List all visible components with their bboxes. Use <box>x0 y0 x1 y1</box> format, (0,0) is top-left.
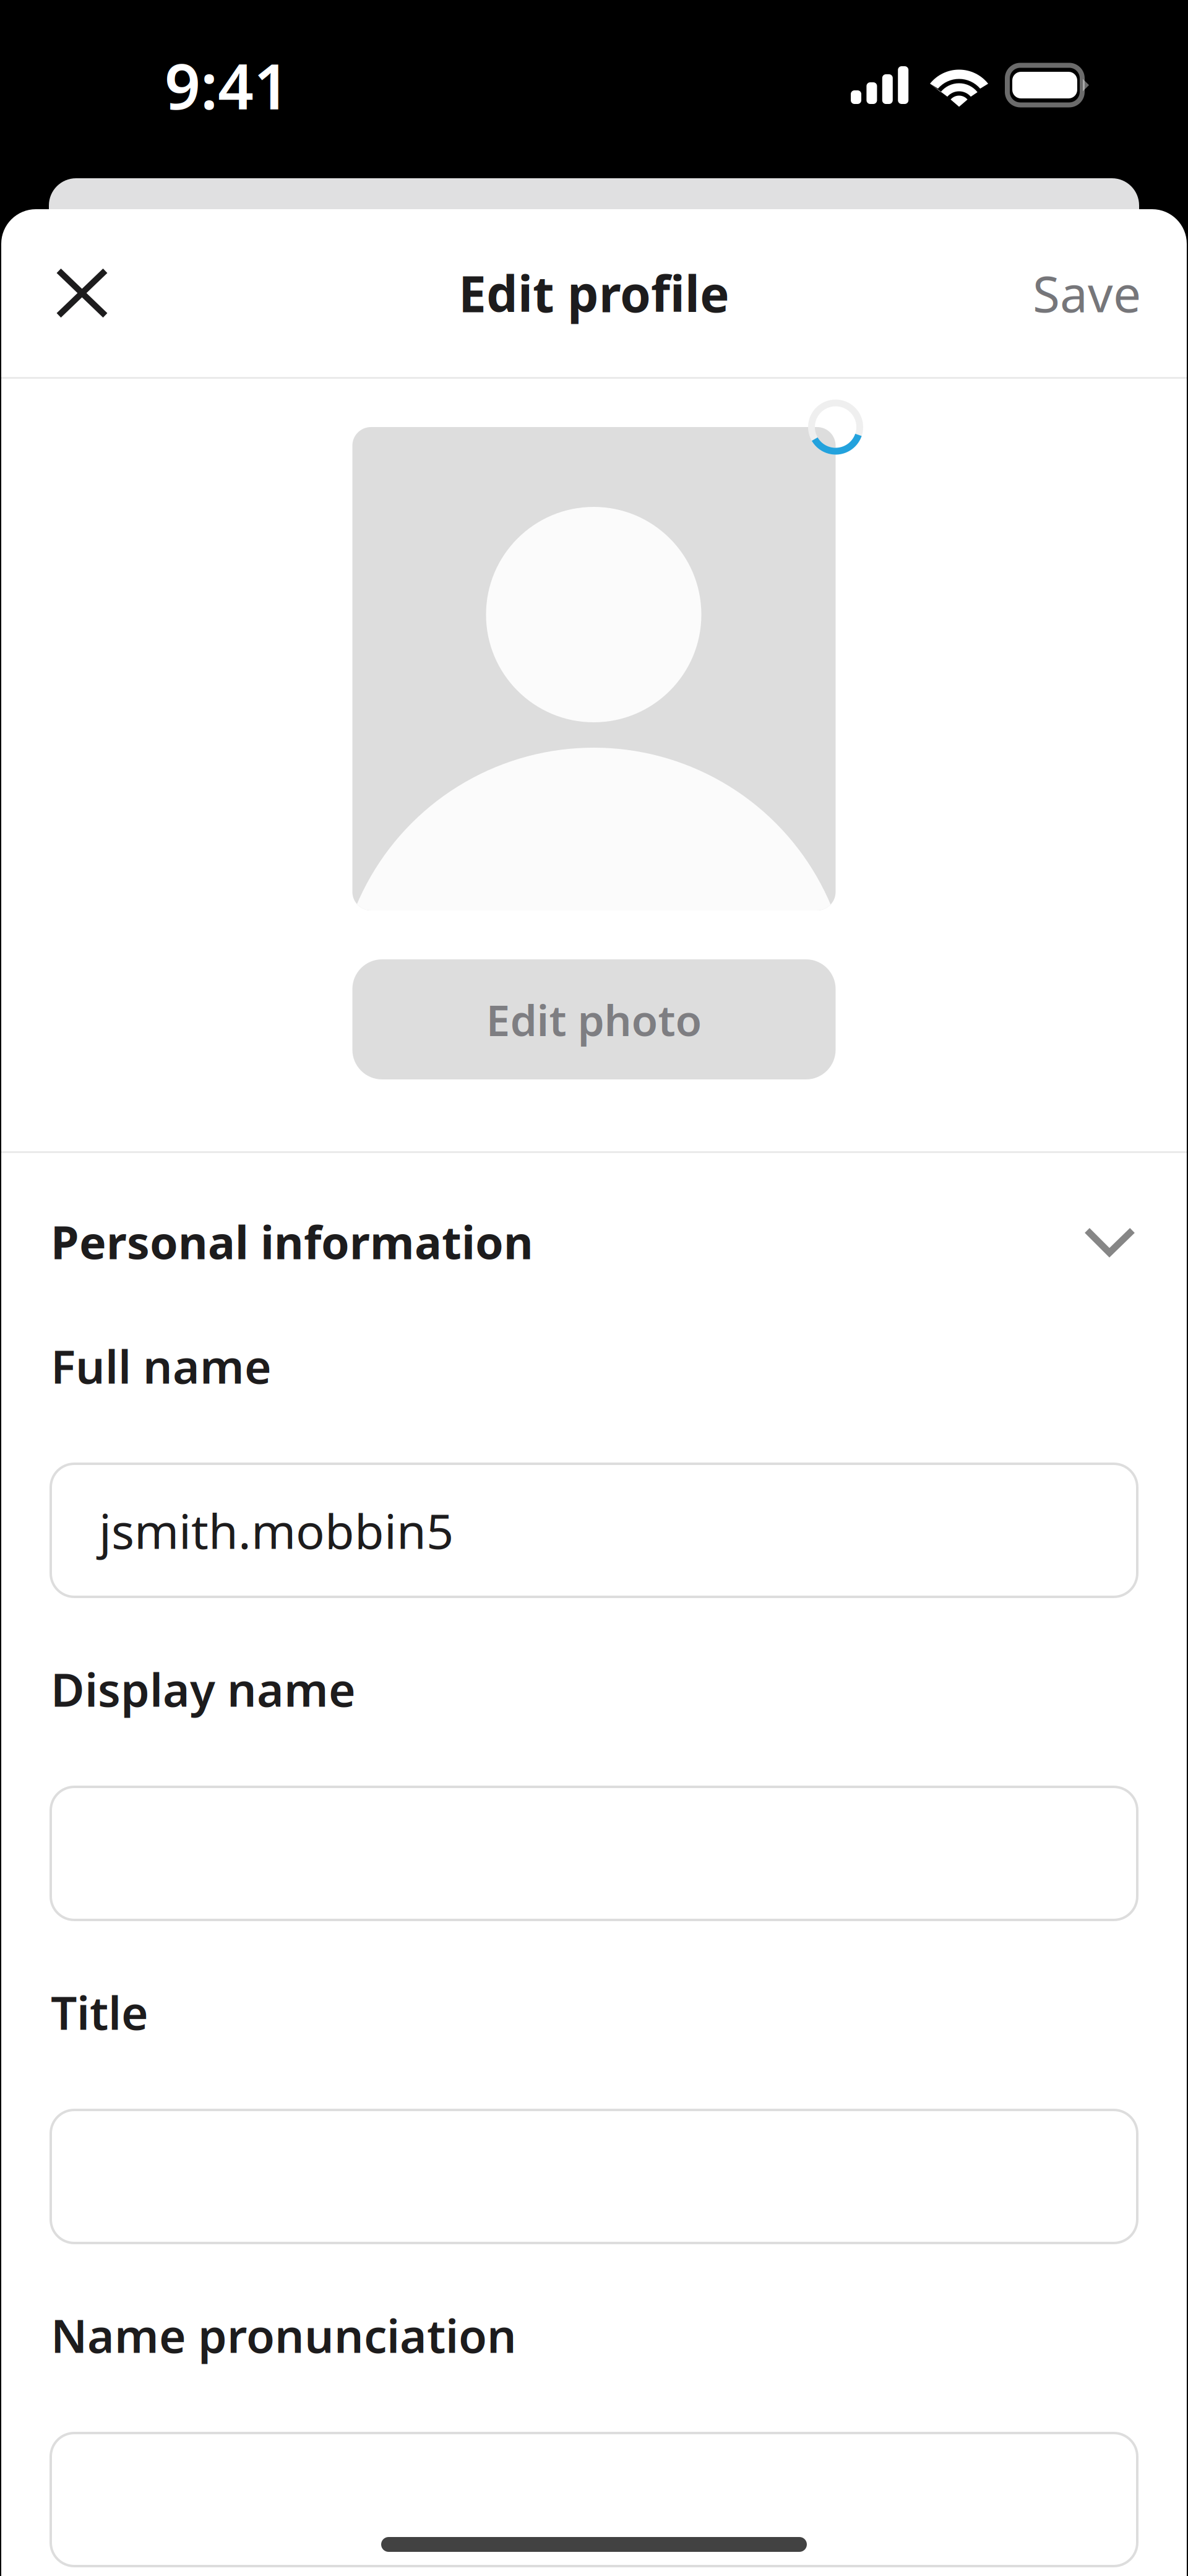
button[interactable]: Edit photo <box>352 959 836 1079</box>
button[interactable] <box>51 1787 1137 1920</box>
staticText: Save <box>1033 260 1141 326</box>
button[interactable] <box>51 2110 1137 2243</box>
staticText: 9:41 <box>165 43 290 127</box>
button[interactable]: Personal information <box>51 1211 1137 1272</box>
staticText: Title <box>51 1981 148 2043</box>
staticText: Name pronunciation <box>51 2304 517 2366</box>
button[interactable] <box>51 2433 1137 2566</box>
staticText: Display name <box>51 1658 356 1720</box>
staticText: Personal information <box>51 1211 533 1272</box>
staticText: jsmith.mobbin5 <box>99 1499 454 1562</box>
staticText: Edit photo <box>486 991 702 1048</box>
staticText: Full name <box>51 1335 272 1396</box>
staticText: Edit profile <box>458 260 730 326</box>
button[interactable]: Save <box>1033 240 1141 346</box>
button[interactable]: Close <box>31 240 133 346</box>
button[interactable]: jsmith.mobbin5 <box>51 1464 1137 1597</box>
